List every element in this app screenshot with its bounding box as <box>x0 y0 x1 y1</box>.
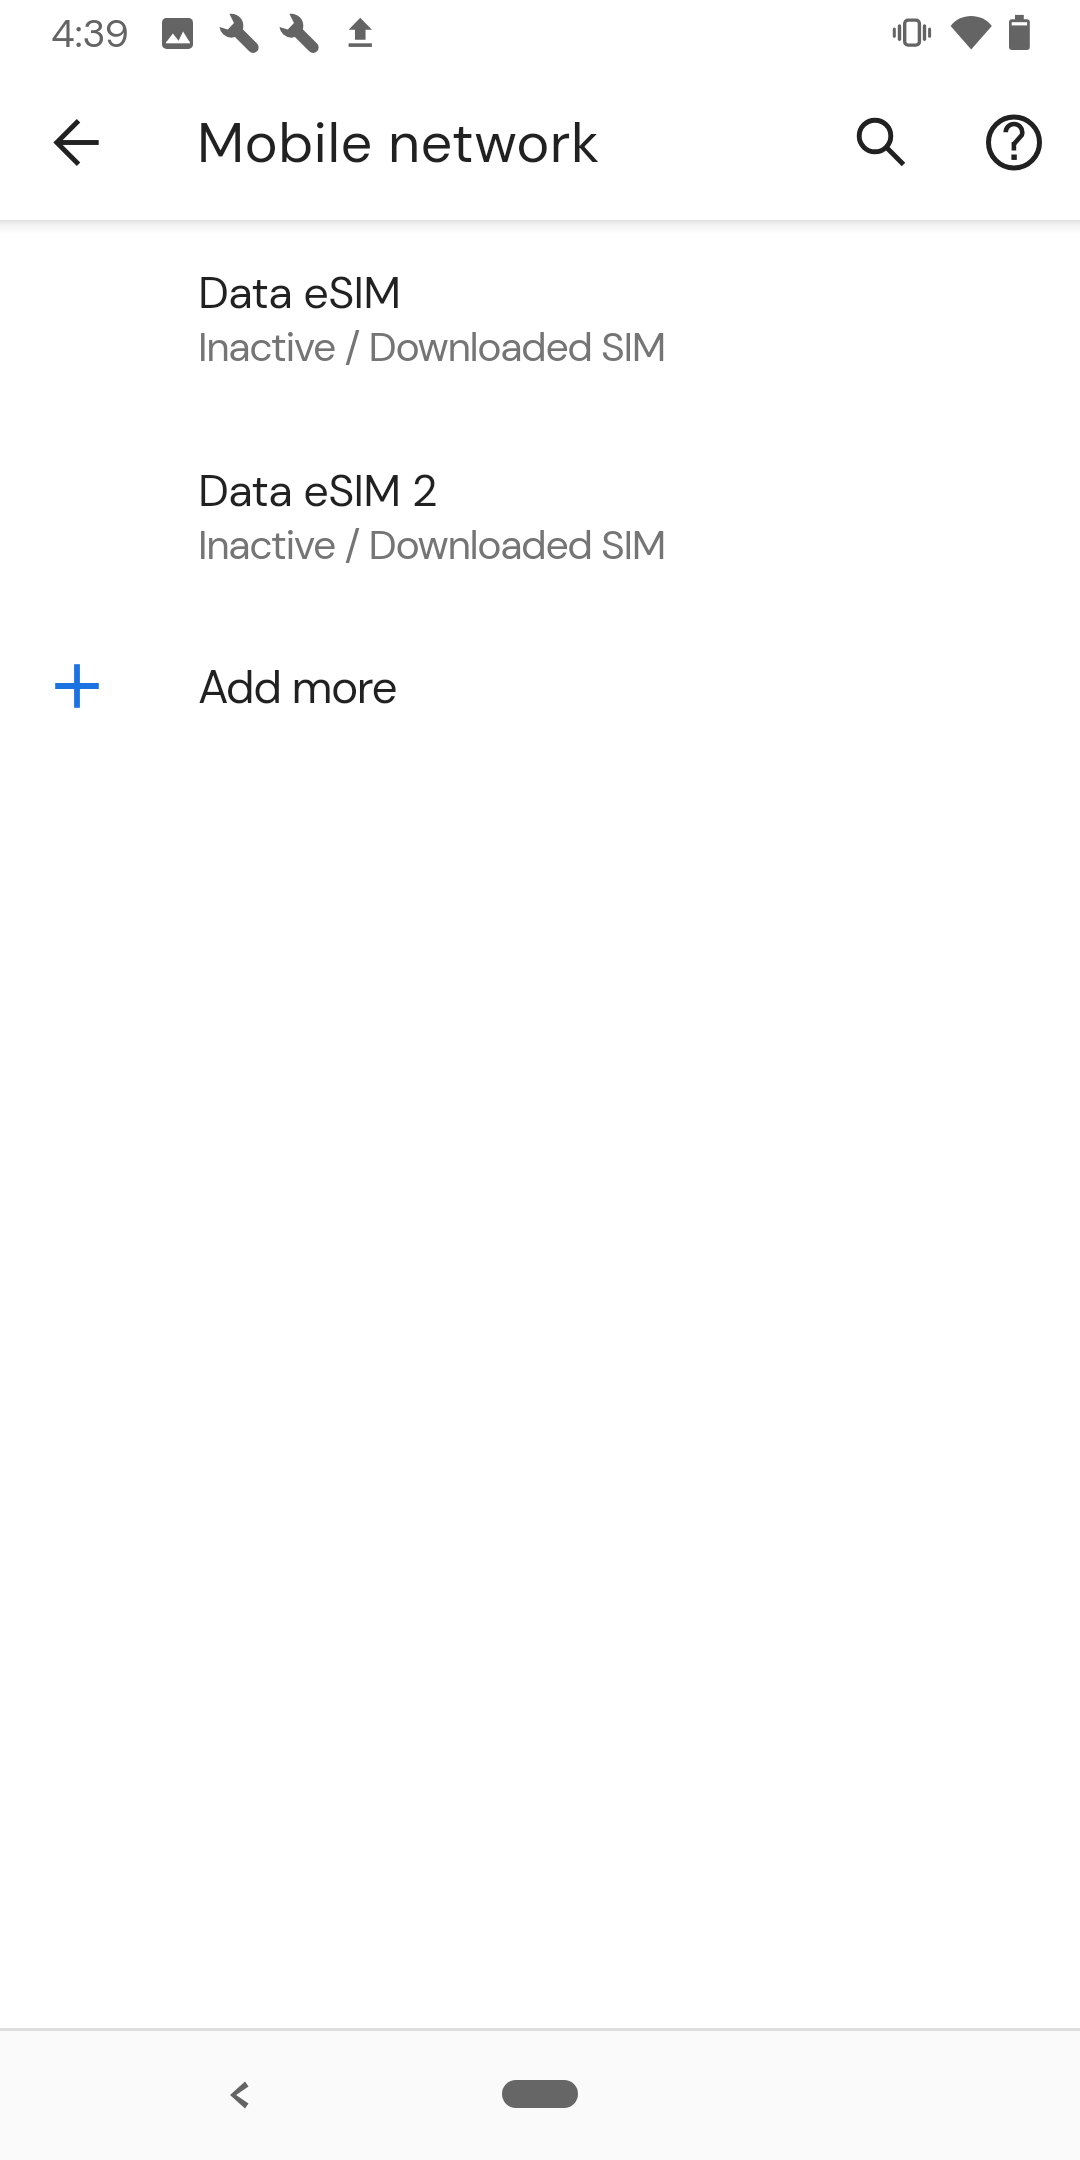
staticText: Mobile network <box>197 106 600 179</box>
button[interactable]: Home <box>502 2080 578 2108</box>
button[interactable]: Help <box>970 98 1059 187</box>
button[interactable]: Back <box>194 2037 283 2126</box>
staticText: Inactive / Downloaded SIM <box>198 320 665 373</box>
button[interactable]: Navigate up <box>33 98 122 187</box>
staticText: Inactive / Downloaded SIM <box>198 518 665 571</box>
button[interactable]: Add more <box>0 631 1080 746</box>
button[interactable]: Search <box>831 92 920 181</box>
staticText: Add more <box>198 657 397 717</box>
staticText: 4:39 <box>51 8 129 59</box>
button[interactable]: Data eSIM 2 <box>0 435 1080 632</box>
staticText: Data eSIM 2 <box>198 461 437 520</box>
staticText: Data eSIM <box>198 263 401 322</box>
button[interactable]: Data eSIM <box>0 237 1080 434</box>
